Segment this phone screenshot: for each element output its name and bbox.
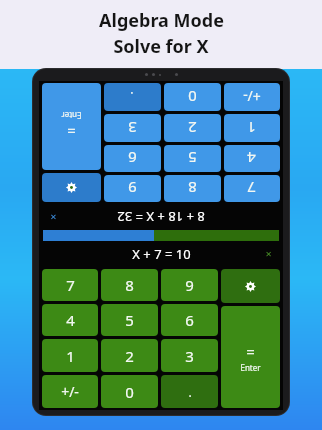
staticText: 8 + 18 + X = 32 bbox=[117, 208, 205, 226]
staticText: Enter bbox=[61, 110, 82, 121]
staticText: Algebra Mode bbox=[99, 8, 224, 33]
staticText: 9 bbox=[185, 275, 194, 295]
staticText: 6 bbox=[185, 310, 194, 330]
button[interactable]: 2 bbox=[164, 114, 221, 142]
staticText: ✕ bbox=[265, 250, 272, 259]
button[interactable]: 3 bbox=[161, 339, 218, 372]
staticText: Solve for X bbox=[113, 34, 209, 59]
button[interactable]: 1 bbox=[42, 339, 98, 372]
staticText: = bbox=[246, 341, 255, 361]
staticText: = bbox=[67, 122, 76, 142]
button[interactable]: 6 bbox=[104, 145, 161, 172]
staticText: X + 7 = 10 bbox=[132, 245, 191, 263]
staticText: +/- bbox=[61, 382, 79, 401]
button[interactable]: 5 bbox=[101, 304, 158, 336]
button[interactable]: Clear top bbox=[47, 210, 61, 224]
button[interactable]: 7 bbox=[224, 175, 280, 202]
staticText: 9 bbox=[128, 178, 137, 198]
staticText: 4 bbox=[247, 148, 256, 168]
staticText: 0 bbox=[188, 87, 197, 107]
button[interactable]: 2 bbox=[101, 339, 158, 372]
button[interactable]: 8 bbox=[164, 175, 221, 202]
staticText: 7 bbox=[247, 178, 256, 198]
staticText: Enter bbox=[240, 362, 261, 373]
button[interactable]: 6 bbox=[161, 304, 218, 336]
staticText: 6 bbox=[128, 148, 137, 168]
button[interactable]: +/- bbox=[42, 375, 98, 408]
staticText: 5 bbox=[125, 310, 134, 330]
staticText: 1 bbox=[66, 346, 75, 366]
staticText: 2 bbox=[125, 346, 134, 366]
button[interactable]: 4 bbox=[224, 145, 280, 172]
staticText: 4 bbox=[66, 310, 75, 330]
button[interactable]: Settings bbox=[42, 173, 101, 202]
button[interactable]: Clear bottom bbox=[261, 247, 275, 261]
staticText: 2 bbox=[188, 118, 197, 138]
button[interactable]: 7 bbox=[42, 269, 98, 301]
staticText: 0 bbox=[125, 382, 134, 402]
button[interactable]: = bbox=[42, 83, 101, 170]
staticText: 7 bbox=[66, 275, 75, 295]
button[interactable]: 5 bbox=[164, 145, 221, 172]
button[interactable]: 8 bbox=[101, 269, 158, 301]
staticText: . bbox=[188, 384, 192, 400]
button[interactable]: . bbox=[104, 83, 161, 111]
button[interactable]: +/- bbox=[224, 83, 280, 111]
button[interactable]: 9 bbox=[161, 269, 218, 301]
staticText: ✕ bbox=[50, 212, 57, 221]
button[interactable]: 4 bbox=[42, 304, 98, 336]
button[interactable]: 3 bbox=[104, 114, 161, 142]
button[interactable]: = bbox=[221, 306, 280, 408]
staticText: . bbox=[130, 89, 134, 105]
button[interactable]: 9 bbox=[104, 175, 161, 202]
button[interactable]: 0 bbox=[101, 375, 158, 408]
staticText: 1 bbox=[247, 118, 256, 138]
button[interactable]: 1 bbox=[224, 114, 280, 142]
staticText: 3 bbox=[185, 346, 194, 366]
staticText: 3 bbox=[128, 118, 137, 138]
staticText: +/- bbox=[243, 87, 261, 106]
staticText: 5 bbox=[188, 148, 197, 168]
button[interactable]: . bbox=[161, 375, 218, 408]
staticText: 8 bbox=[188, 178, 197, 198]
button[interactable]: 0 bbox=[164, 83, 221, 111]
button[interactable]: Settings bbox=[221, 269, 280, 303]
staticText: 8 bbox=[125, 275, 134, 295]
